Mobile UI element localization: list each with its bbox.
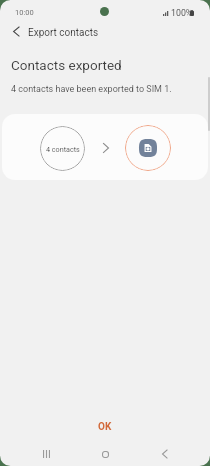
staticText: Contacts exported [11,57,122,73]
staticText: 4 contacts have been exported to SIM 1. [11,84,172,95]
button[interactable]: Back [147,437,181,466]
button[interactable]: Recent apps [29,437,63,466]
button[interactable] [125,125,171,171]
button[interactable]: Navigate up [3,19,28,44]
button[interactable]: Home [88,437,122,466]
staticText: 100% [171,8,193,18]
staticText: 4 contacts [46,145,80,153]
staticText: OK [98,421,112,433]
staticText: 10:00 [15,8,34,17]
button[interactable]: 4 contacts [40,126,85,171]
button[interactable]: OK [84,415,126,439]
staticText: Export contacts [28,27,99,39]
